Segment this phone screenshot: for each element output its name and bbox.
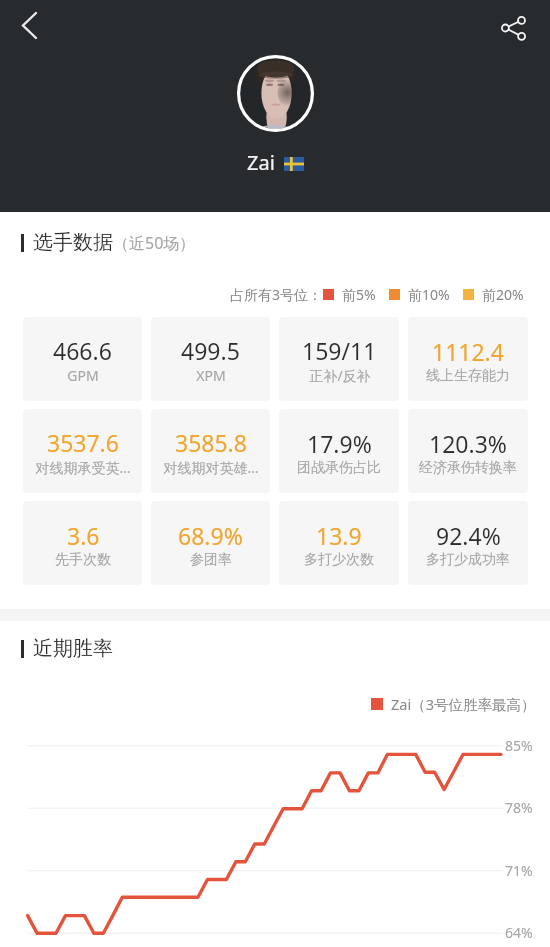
button[interactable]: 499.5 xyxy=(151,317,270,401)
staticText: 466.6 xyxy=(53,335,112,366)
staticText: 13.9 xyxy=(316,520,362,551)
staticText: 159/11 xyxy=(302,335,377,366)
staticText: Zai xyxy=(247,149,275,176)
staticText: 120.3% xyxy=(429,428,507,459)
staticText: 前5% xyxy=(342,285,376,304)
staticText: 3585.8 xyxy=(175,427,247,458)
staticText: 对线期对英雄… xyxy=(163,458,259,477)
staticText: 85% xyxy=(505,736,533,755)
staticText: 3537.6 xyxy=(47,427,119,458)
staticText: 17.9% xyxy=(307,428,372,459)
staticText: 71% xyxy=(505,861,533,880)
staticText: 多打少成功率 xyxy=(426,551,510,569)
staticText: 1112.4 xyxy=(432,336,504,367)
staticText: 64% xyxy=(505,923,533,942)
staticText: 对线期承受英… xyxy=(35,458,131,477)
button[interactable]: Back xyxy=(7,3,51,47)
staticText: 近期胜率 xyxy=(33,636,113,661)
button[interactable]: 1112.4 xyxy=(408,317,528,401)
button[interactable]: 120.3% xyxy=(408,409,528,493)
staticText: 3.6 xyxy=(67,520,100,551)
staticText: 经济承伤转换率 xyxy=(419,459,517,477)
button[interactable]: 17.9% xyxy=(279,409,399,493)
staticText: 499.5 xyxy=(181,335,240,366)
button[interactable]: 68.9% xyxy=(151,501,270,585)
staticText: 选手数据 xyxy=(33,230,113,255)
button[interactable]: 3.6 xyxy=(23,501,142,585)
button[interactable]: 466.6 xyxy=(23,317,142,401)
staticText: （近50场） xyxy=(113,232,196,254)
button[interactable]: Share xyxy=(492,6,536,50)
staticText: 前10% xyxy=(408,285,450,304)
staticText: 参团率 xyxy=(190,551,232,569)
staticText: 前20% xyxy=(482,285,524,304)
button[interactable]: 3585.8 xyxy=(151,409,270,493)
staticText: 92.4% xyxy=(436,520,501,551)
staticText: Zai（3号位胜率最高） xyxy=(391,694,536,714)
button[interactable]: 3537.6 xyxy=(23,409,142,493)
staticText: 正补/反补 xyxy=(309,366,371,385)
staticText: 68.9% xyxy=(178,520,243,551)
staticText: 78% xyxy=(505,798,533,817)
staticText: 多打少次数 xyxy=(304,551,374,569)
staticText: 线上生存能力 xyxy=(426,367,510,385)
staticText: 占所有3号位： xyxy=(230,285,323,304)
button[interactable]: 159/11 xyxy=(279,317,399,401)
button[interactable]: 92.4% xyxy=(408,501,528,585)
staticText: GPM xyxy=(67,366,99,385)
button[interactable]: 13.9 xyxy=(279,501,399,585)
staticText: 团战承伤占比 xyxy=(297,459,381,477)
staticText: XPM xyxy=(196,366,226,385)
staticText: 先手次数 xyxy=(55,551,111,569)
